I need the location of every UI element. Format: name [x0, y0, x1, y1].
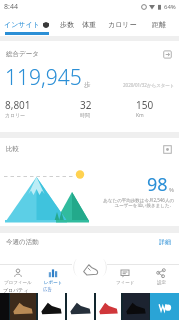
button[interactable]: Start activity	[73, 256, 107, 279]
button[interactable]	[123, 293, 149, 320]
button[interactable]: 詳細	[157, 236, 173, 248]
staticText: 歩	[84, 81, 91, 89]
button[interactable]: Open detail	[161, 48, 174, 61]
staticText: 比較	[6, 145, 19, 153]
button[interactable]: 歩数	[55, 13, 78, 36]
staticText: あなたの平均歩数は今月2,546人の ユーザーを追い抜きました。	[103, 197, 174, 209]
button[interactable]	[0, 293, 179, 320]
staticText: 今週の活動	[6, 238, 39, 246]
staticText: 時間	[80, 112, 90, 118]
staticText: 設定	[157, 280, 166, 286]
staticText: カロリー	[108, 20, 137, 29]
button[interactable]	[10, 293, 36, 320]
staticText: 64%	[164, 3, 176, 11]
staticText: 8,801	[5, 98, 31, 112]
staticText: 総合データ	[6, 50, 39, 58]
staticText: %	[169, 186, 174, 194]
button[interactable]	[38, 293, 65, 320]
button[interactable]	[96, 293, 121, 320]
staticText: 歩数	[60, 20, 74, 29]
staticText: 119,945	[5, 63, 82, 92]
button[interactable]: フィード	[107, 264, 143, 287]
staticText: カロリー	[5, 112, 26, 118]
button[interactable]: カロリー	[100, 13, 144, 36]
staticText: 広告	[43, 287, 52, 293]
button[interactable]: Compare info	[161, 143, 174, 156]
staticText: プロフィール	[4, 280, 32, 286]
staticText: 体重	[82, 20, 96, 29]
staticText: 8:44	[4, 2, 18, 12]
staticText: 距離	[152, 20, 166, 29]
button[interactable]: レポート	[35, 264, 71, 287]
button[interactable]: 距離	[144, 13, 173, 36]
staticText: レポート	[44, 280, 63, 286]
staticText: 詳細	[159, 238, 171, 246]
staticText: プロパティ	[3, 287, 29, 293]
staticText: フィード	[116, 280, 135, 286]
button[interactable]: インサイト	[0, 13, 55, 36]
button[interactable]: 設定	[143, 264, 179, 287]
staticText: 32	[80, 98, 92, 112]
staticText: 2020/01/32からスタート	[123, 82, 175, 88]
staticText: 150	[136, 98, 154, 112]
staticText: インサイト	[4, 20, 40, 29]
staticText: 98	[147, 172, 168, 197]
button[interactable]: 体重	[78, 13, 100, 36]
button[interactable]: プロフィール	[0, 264, 35, 287]
staticText: Km	[136, 112, 144, 119]
button[interactable]	[67, 293, 94, 320]
